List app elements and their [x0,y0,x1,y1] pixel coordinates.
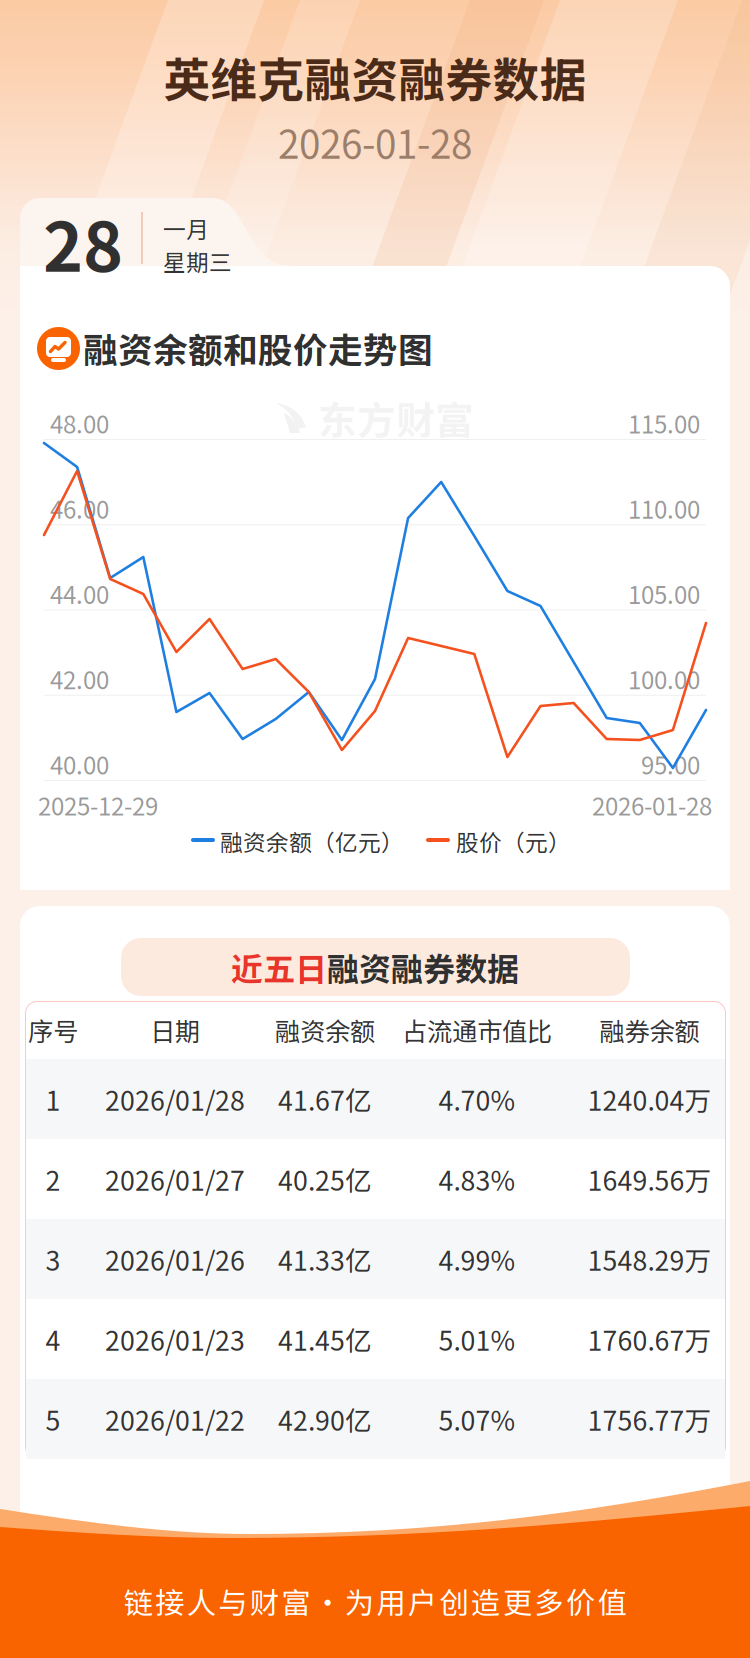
staticText: 3 [45,1240,60,1278]
staticText: 4 [45,1320,60,1358]
staticText: 41.33亿 [278,1240,372,1278]
staticText: 100.00 [628,661,700,696]
staticText: 95.00 [641,747,700,781]
staticText: 东方财富 [318,390,474,446]
staticText: 2026/01/26 [105,1240,245,1278]
staticText: 近五日 [231,944,327,990]
staticText: 48.00 [50,406,109,440]
staticText: 2026-01-28 [592,788,712,822]
staticText: 1240.04万 [587,1080,711,1118]
staticText: 28 [43,193,123,291]
staticText: 105.00 [628,576,700,611]
staticText: 4.70% [438,1080,515,1118]
staticText: 2025-12-29 [38,788,158,822]
staticText: 5 [45,1400,60,1438]
staticText: 2026/01/28 [105,1080,245,1118]
staticText: 5.07% [438,1400,515,1438]
staticText: 1649.56万 [587,1160,711,1198]
staticText: 44.00 [50,576,109,611]
staticText: 融资融券数据 [327,944,519,990]
staticText: 2026/01/27 [105,1160,245,1198]
staticText: 一月 [163,212,209,244]
staticText: 1548.29万 [587,1240,711,1278]
staticText: 2026-01-28 [278,114,472,170]
staticText: 2 [45,1160,60,1198]
staticText: 46.00 [50,491,109,526]
staticText: 占流通市值比 [402,1012,552,1048]
staticText: 链接人与财富·为用户创造更多价值 [123,1580,626,1622]
staticText: 1756.77万 [587,1400,711,1438]
staticText: 融资余额和股价走势图 [83,323,433,373]
staticText: 42.90亿 [278,1400,372,1438]
staticText: 4.99% [438,1240,515,1278]
staticText: 融资余额 [275,1012,375,1048]
staticText: 星期三 [163,245,232,277]
staticText: 融资余额（亿元） [220,825,404,857]
staticText: 东方财富 [318,1210,474,1266]
staticText: 2026/01/23 [105,1320,245,1358]
staticText: 41.45亿 [278,1320,372,1358]
staticText: 41.67亿 [278,1080,372,1118]
staticText: 40.25亿 [278,1160,372,1198]
staticText: 1 [45,1080,60,1118]
staticText: 序号 [28,1012,78,1048]
staticText: 115.00 [628,406,700,440]
staticText: 4.83% [438,1160,515,1198]
staticText: 40.00 [50,747,109,781]
staticText: 融券余额 [599,1012,699,1048]
staticText: 日期 [150,1012,200,1048]
staticText: 2026/01/22 [105,1400,245,1438]
staticText: 股价（元） [456,825,571,857]
staticText: 42.00 [50,661,109,696]
staticText: 英维克融资融券数据 [163,43,586,111]
staticText: 1760.67万 [587,1320,711,1358]
staticText: 110.00 [628,491,700,526]
staticText: 5.01% [438,1320,515,1358]
